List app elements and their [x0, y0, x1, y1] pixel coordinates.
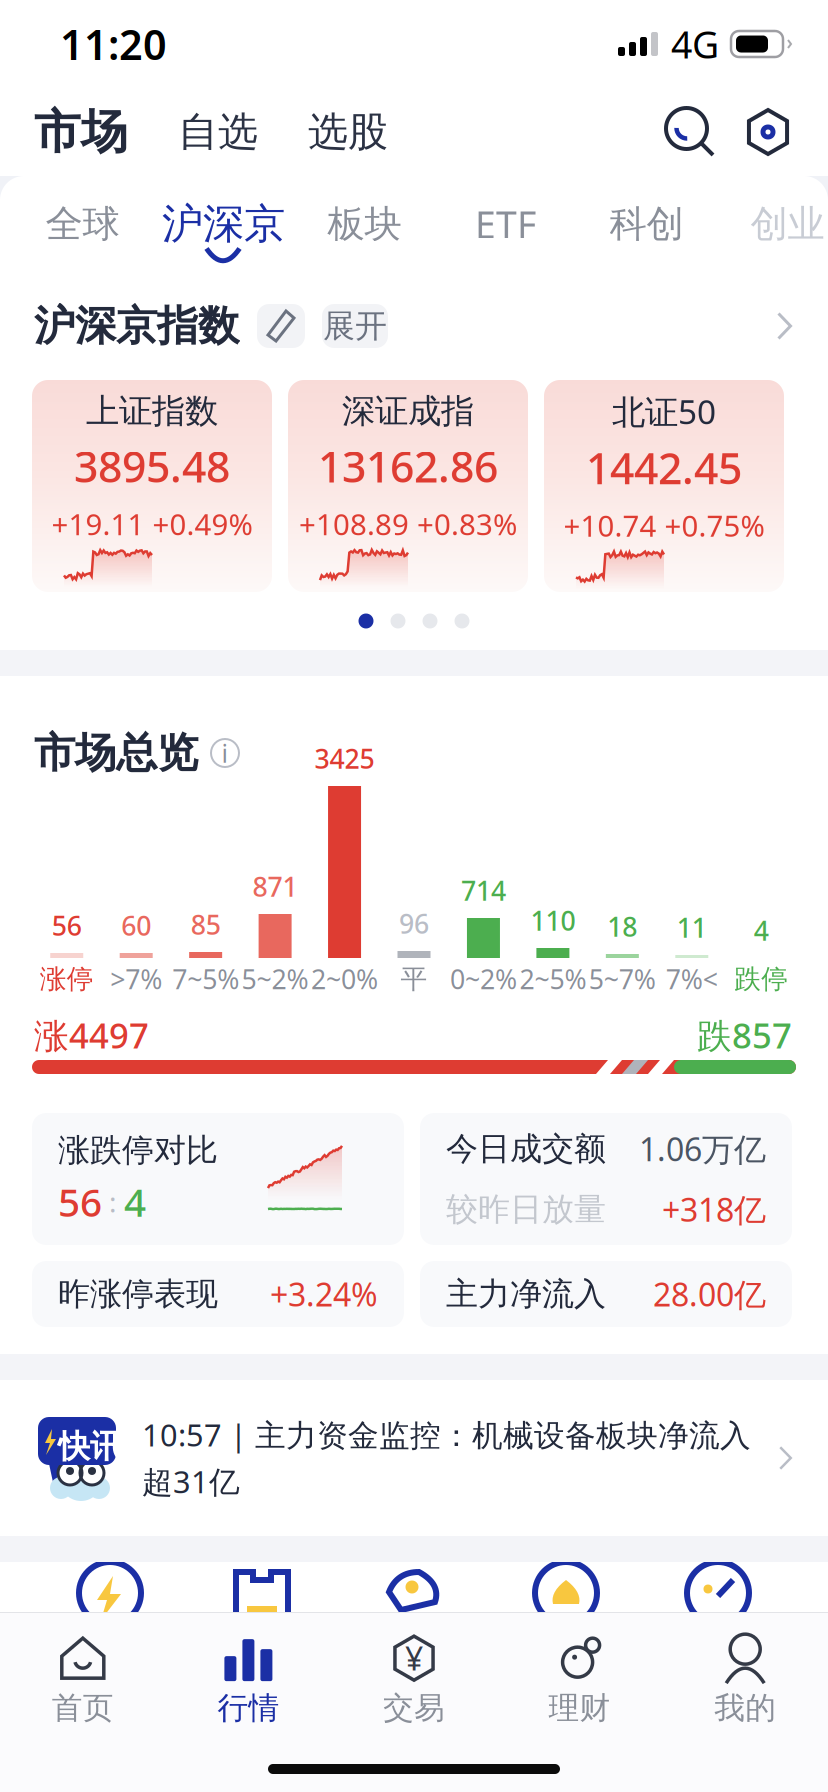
staticText: 28.00亿 [653, 1273, 766, 1315]
button[interactable]: 我的 [662, 1625, 828, 1735]
staticText: 110 [530, 903, 575, 938]
staticText: 96 [399, 906, 429, 941]
staticText: 展开 [323, 306, 387, 346]
staticText: 11 [677, 910, 707, 945]
button[interactable]: 北证50 [544, 380, 784, 592]
button[interactable]: 理财 [497, 1625, 662, 1735]
button[interactable]: 快捷入口 [642, 1562, 794, 1624]
staticText: 13162.86 [318, 438, 498, 494]
staticText: +318亿 [662, 1188, 766, 1230]
staticText: 涨跌停对比 [58, 1131, 218, 1170]
staticText: 首页 [52, 1689, 114, 1727]
button[interactable]: 自选 [128, 107, 258, 156]
staticText: 1.06万亿 [639, 1127, 766, 1170]
staticText: 7~5% [172, 961, 239, 997]
staticText: 5~7% [589, 961, 656, 997]
staticText: 市场总览 [34, 728, 198, 778]
staticText: 市场 [34, 103, 128, 161]
button[interactable]: 行情 [166, 1625, 331, 1735]
staticText: 选股 [308, 107, 388, 156]
staticText: ETF [475, 199, 536, 249]
staticText: 10:57 | 主力资金监控：机械设备板块净流入 [142, 1414, 751, 1455]
staticText: +108.89 +0.83% [299, 504, 517, 543]
staticText: 714 [461, 873, 506, 908]
button[interactable]: 市场 [34, 103, 128, 161]
button[interactable]: 快捷入口 [34, 1562, 186, 1624]
button[interactable]: ¥ [331, 1625, 497, 1735]
staticText: 理财 [549, 1689, 611, 1727]
staticText: 871 [253, 869, 298, 904]
button[interactable]: 昨涨停表现 [32, 1261, 404, 1327]
staticText: 沪深京指数 [34, 301, 239, 351]
button[interactable]: 科创 [576, 176, 717, 272]
staticText: 0~2% [450, 961, 517, 997]
staticText: 快讯 [58, 1427, 122, 1466]
staticText: 涨4497 [34, 1012, 149, 1058]
staticText: 跌停 [734, 963, 788, 995]
staticText: 7%< [666, 961, 718, 997]
staticText: +3.24% [270, 1273, 378, 1315]
staticText: 板块 [327, 201, 401, 247]
staticText: : [102, 1183, 124, 1220]
button[interactable]: 搜索 [666, 108, 714, 156]
button[interactable]: 上证指数 [32, 380, 272, 592]
button[interactable]: 板块 [294, 176, 435, 272]
staticText: 3425 [314, 741, 374, 776]
button[interactable]: 快捷入口 [338, 1562, 490, 1624]
button[interactable]: 快捷入口 [490, 1562, 642, 1624]
staticText: 交易 [383, 1689, 445, 1727]
staticText: 涨停 [40, 963, 94, 995]
staticText: 沪深京 [162, 199, 285, 249]
button[interactable]: 快捷入口 [186, 1562, 338, 1624]
staticText: >7% [110, 961, 162, 997]
staticText: 56 [52, 908, 82, 943]
staticText: 3895.48 [74, 438, 230, 494]
staticText: 上证指数 [86, 391, 218, 432]
staticText: 北证50 [612, 389, 716, 433]
button[interactable]: 创业 [717, 176, 828, 272]
button[interactable]: ETF [435, 176, 576, 272]
staticText: +10.74 +0.75% [563, 506, 764, 545]
button[interactable]: 编辑 [239, 304, 305, 348]
button[interactable]: 涨跌停对比 [32, 1113, 404, 1245]
button[interactable]: 沪深京 [153, 176, 294, 272]
staticText: 18 [607, 909, 637, 944]
staticText: ¥ [405, 1637, 423, 1679]
staticText: 全球 [45, 201, 119, 247]
staticText: 4 [754, 913, 769, 948]
staticText: 4G [671, 19, 719, 69]
staticText: 超31亿 [142, 1461, 240, 1502]
button[interactable]: 主力净流入 [420, 1261, 792, 1327]
button[interactable]: 全球 [12, 176, 153, 272]
staticText: 85 [191, 907, 221, 942]
button[interactable]: 深证成指 [288, 380, 528, 592]
button[interactable]: 设置 [714, 108, 792, 156]
staticText: 主力净流入 [446, 1274, 606, 1314]
staticText: 5~2% [242, 961, 309, 997]
button[interactable]: 更多 [777, 312, 792, 340]
button[interactable]: 快讯 [0, 1380, 828, 1536]
staticText: i [221, 736, 228, 770]
button[interactable]: 展开 [305, 304, 388, 348]
staticText: 11:20 [60, 17, 167, 71]
staticText: 较昨日放量 [446, 1190, 606, 1229]
staticText: 科创 [609, 201, 683, 247]
staticText: 今日成交额 [446, 1129, 606, 1168]
staticText: 2~0% [311, 961, 378, 997]
staticText: 4 [124, 1176, 146, 1227]
staticText: +19.11 +0.49% [51, 504, 252, 543]
button[interactable]: 今日成交额 [420, 1113, 792, 1245]
button[interactable]: 首页 [0, 1625, 166, 1735]
staticText: 创业 [750, 201, 824, 247]
staticText: 56 [58, 1176, 102, 1227]
staticText: 昨涨停表现 [58, 1274, 218, 1314]
button[interactable]: 选股 [258, 107, 388, 156]
button[interactable]: 说明 [210, 738, 240, 768]
staticText: 行情 [217, 1689, 279, 1727]
staticText: 跌857 [697, 1012, 792, 1058]
staticText: 2~5% [519, 961, 586, 997]
staticText: 平 [400, 963, 427, 995]
staticText: 我的 [714, 1689, 776, 1727]
staticText: 60 [121, 908, 151, 943]
staticText: 深证成指 [342, 391, 474, 432]
